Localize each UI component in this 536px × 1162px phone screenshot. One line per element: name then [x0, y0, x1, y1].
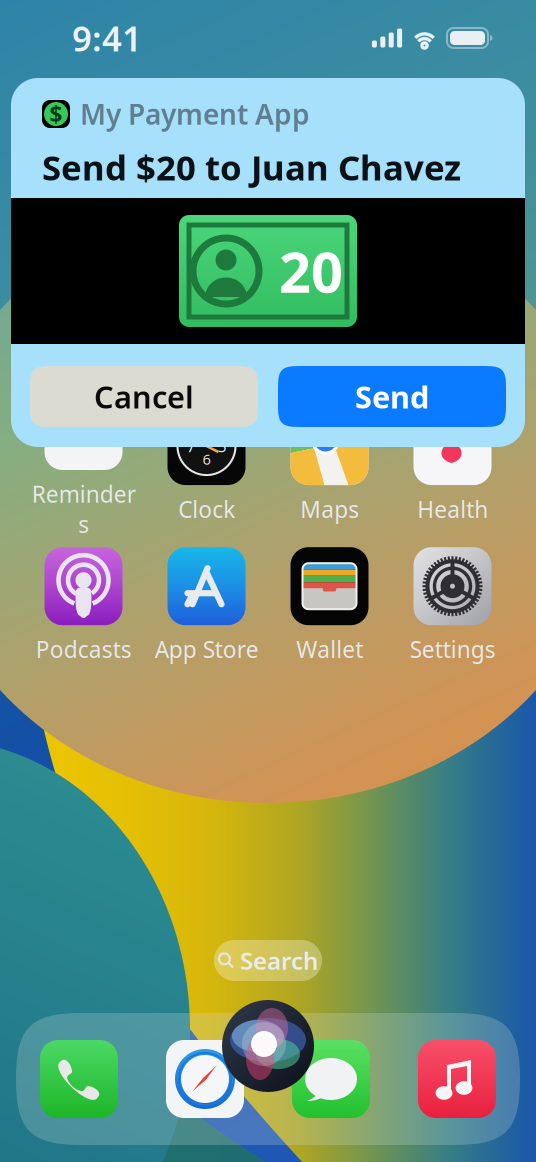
staticText: 20: [279, 234, 343, 308]
staticText: Send $20 to Juan Chavez: [42, 144, 461, 190]
staticText: 6: [202, 449, 210, 469]
button[interactable]: Podcasts: [22, 547, 145, 664]
staticText: Reminder s: [31, 479, 135, 539]
staticText: 9:41: [72, 15, 142, 61]
staticText: Maps: [300, 494, 359, 524]
staticText: My Payment App: [80, 95, 310, 133]
staticText: App Store: [154, 634, 258, 664]
button[interactable]: 7: [145, 407, 268, 524]
staticText: 5: [217, 435, 226, 457]
button[interactable]: Phone: [16, 1040, 142, 1118]
button[interactable]: Cancel: [30, 366, 258, 427]
button[interactable]: Music: [394, 1040, 520, 1118]
button[interactable]: Health: [391, 407, 514, 524]
button[interactable]: Reminder s: [22, 392, 145, 539]
staticText: Health: [417, 494, 488, 524]
staticText: Cancel: [94, 376, 194, 417]
button[interactable]: Settings: [391, 547, 514, 664]
button[interactable]: Wallet: [268, 547, 391, 664]
staticText: Search: [240, 945, 318, 976]
staticText: Settings: [409, 634, 495, 664]
staticText: $: [49, 99, 62, 129]
button[interactable]: Search: [214, 940, 322, 981]
staticText: 7: [186, 435, 195, 457]
button[interactable]: Messages: [268, 1040, 394, 1118]
staticText: Send: [355, 376, 429, 417]
staticText: Podcasts: [35, 634, 131, 664]
button[interactable]: Maps: [268, 407, 391, 524]
staticText: Clock: [178, 494, 235, 524]
button[interactable]: App Store: [145, 547, 268, 664]
button[interactable]: Safari: [142, 1040, 268, 1118]
button[interactable]: Send: [278, 366, 506, 427]
staticText: Wallet: [296, 634, 363, 664]
